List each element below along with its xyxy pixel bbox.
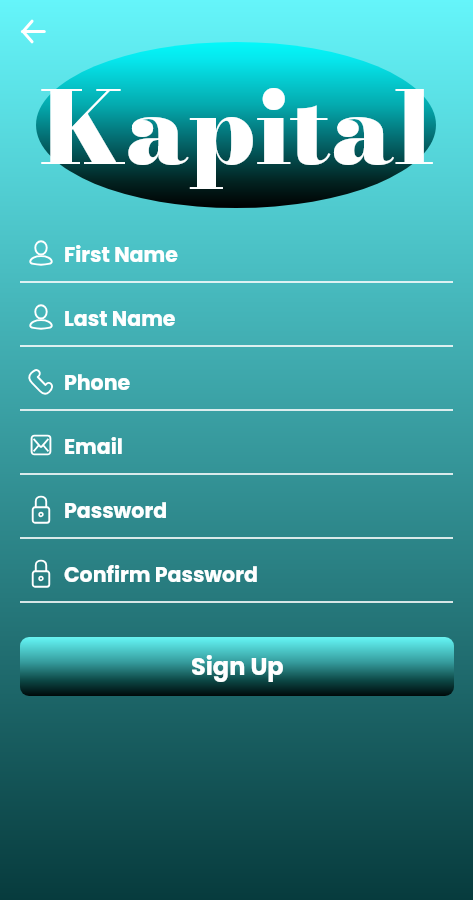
button[interactable]: Confirm Password [0,548,473,612]
staticText: First Name [64,240,178,269]
staticText: Sign Up [191,650,284,684]
staticText: Email [64,432,123,461]
button[interactable]: Email [0,420,473,484]
button[interactable]: Password [0,484,473,548]
staticText: Last Name [64,304,176,333]
staticText: Kapital [40,51,434,204]
button[interactable]: Sign Up [20,637,454,696]
button[interactable]: Last Name [0,292,473,356]
staticText: Password [64,496,168,525]
staticText: Confirm Password [64,560,258,589]
button[interactable]: First Name [0,228,473,292]
staticText: Phone [64,368,131,397]
button[interactable]: Back [11,9,55,53]
button[interactable]: Phone [0,356,473,420]
